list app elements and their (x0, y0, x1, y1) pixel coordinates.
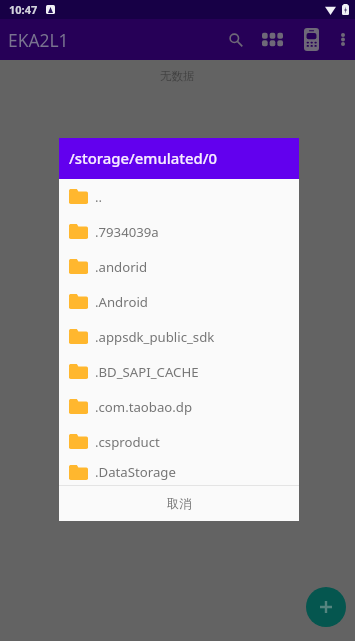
button[interactable]: .DataStorage (59, 459, 299, 485)
button[interactable]: 取消 (59, 486, 299, 520)
button[interactable]: Devices (296, 19, 326, 60)
button[interactable]: .BD_SAPI_CACHE (59, 354, 299, 389)
staticText: .. (95, 188, 103, 206)
button[interactable]: .com.taobao.dp (59, 389, 299, 424)
staticText: .csproduct (95, 433, 160, 451)
button[interactable]: .7934039a (59, 214, 299, 249)
staticText: .7934039a (95, 223, 159, 241)
staticText: .Android (95, 293, 148, 311)
staticText: .DataStorage (95, 463, 176, 481)
staticText: .BD_SAPI_CACHE (95, 363, 199, 381)
button[interactable]: Search (220, 19, 252, 60)
staticText: .andorid (95, 258, 148, 276)
staticText: EKA2L1 (8, 28, 69, 52)
staticText: .com.taobao.dp (95, 398, 193, 416)
button[interactable]: Applications (256, 19, 289, 60)
staticText: 取消 (167, 496, 192, 511)
staticText: .appsdk_public_sdk (95, 328, 215, 346)
staticText: 无数据 (160, 69, 195, 83)
staticText: 10:47 (9, 2, 38, 17)
staticText: /storage/emulated/0 (69, 148, 218, 168)
button[interactable]: .csproduct (59, 424, 299, 459)
button[interactable]: .. (59, 179, 299, 214)
button[interactable]: .appsdk_public_sdk (59, 319, 299, 354)
button[interactable]: .andorid (59, 249, 299, 284)
button[interactable]: .Android (59, 284, 299, 319)
button[interactable]: Add (306, 587, 346, 627)
button[interactable]: More options (332, 19, 354, 60)
